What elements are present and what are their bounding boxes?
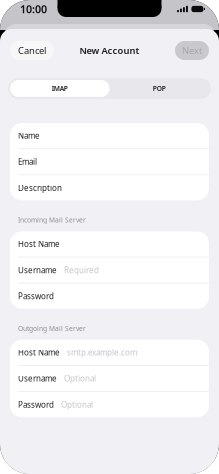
button[interactable]: Username [10, 366, 209, 391]
staticText: New Account [79, 44, 139, 57]
staticText: Host Name [18, 347, 60, 358]
button[interactable]: Password [10, 392, 209, 417]
staticText: Description [18, 182, 62, 193]
staticText: Required [64, 265, 99, 275]
button[interactable]: Name [10, 123, 209, 148]
staticText: 10:00 [20, 2, 47, 16]
button[interactable]: Next [175, 41, 209, 60]
button[interactable]: Password [10, 284, 209, 309]
button[interactable]: Email [10, 149, 209, 174]
button[interactable]: Cancel [10, 41, 54, 60]
staticText: Next [182, 44, 202, 57]
staticText: POP [153, 84, 166, 93]
button[interactable]: Username [10, 257, 209, 283]
staticText: Outgoing Mail Server [18, 324, 86, 333]
staticText: Optional [64, 373, 96, 384]
staticText: Cancel [18, 44, 46, 57]
staticText: Host Name [18, 239, 60, 249]
staticText: Username [18, 373, 57, 384]
staticText: Password [18, 399, 54, 410]
button[interactable]: IMAP [10, 80, 109, 97]
staticText: Name [18, 130, 40, 141]
button[interactable]: Host Name [10, 231, 209, 257]
staticText: Username [18, 265, 57, 275]
staticText: IMAP [52, 84, 68, 93]
staticText: Password [18, 291, 54, 301]
staticText: Optional [61, 399, 93, 410]
staticText: smtp.example.com [67, 347, 137, 358]
button[interactable]: Host Name [10, 340, 209, 365]
staticText: Incoming Mail Server [18, 215, 86, 224]
button[interactable]: Description [10, 175, 209, 200]
button[interactable]: POP [109, 80, 209, 97]
staticText: Email [18, 156, 37, 167]
